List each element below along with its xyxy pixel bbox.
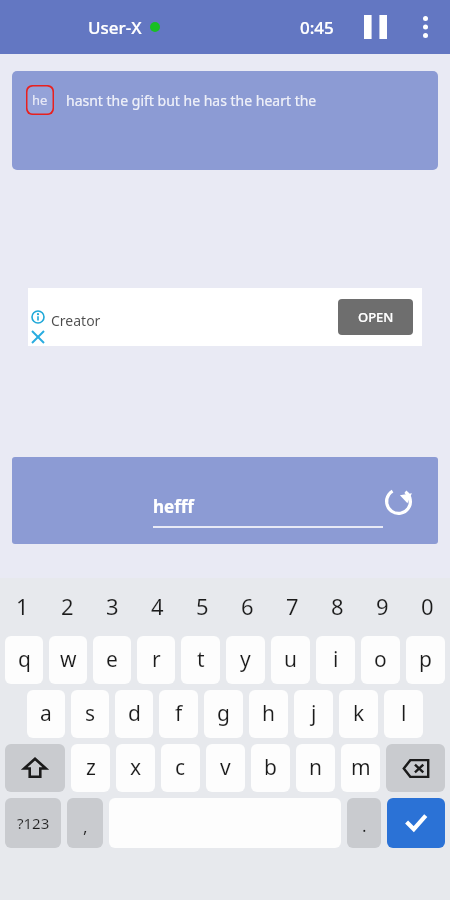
staticText: OPEN xyxy=(358,308,394,326)
button[interactable]: o xyxy=(361,636,400,684)
staticText: y xyxy=(240,645,251,674)
staticText: u xyxy=(284,645,297,674)
button[interactable]: OPEN xyxy=(338,299,413,335)
staticText: g xyxy=(217,699,230,728)
staticText: o xyxy=(374,645,387,674)
staticText: v xyxy=(220,753,231,782)
staticText: h xyxy=(262,699,275,728)
button[interactable]: p xyxy=(406,636,445,684)
staticText: n xyxy=(309,753,322,782)
button[interactable]: 5 xyxy=(180,578,225,633)
staticText: t xyxy=(197,645,205,674)
staticText: z xyxy=(86,753,96,782)
button[interactable]: c xyxy=(161,744,200,792)
button[interactable]: g xyxy=(204,690,243,738)
staticText: he xyxy=(32,91,48,109)
staticText: c xyxy=(175,753,186,782)
button[interactable]: Backspace xyxy=(386,744,445,792)
button[interactable]: r xyxy=(137,636,175,684)
staticText: 8 xyxy=(331,591,344,621)
staticText: 0:45 xyxy=(300,16,334,39)
button[interactable]: Enter xyxy=(387,798,445,848)
button[interactable]: 8 xyxy=(315,578,360,633)
staticText: d xyxy=(128,699,141,728)
button[interactable]: Shift xyxy=(5,744,65,792)
staticText: hasnt the gift but he has the heart the xyxy=(66,91,317,110)
button[interactable]: q xyxy=(5,636,43,684)
staticText: 9 xyxy=(376,591,389,621)
button[interactable]: k xyxy=(339,690,378,738)
button[interactable]: 0 xyxy=(405,578,450,633)
staticText: . xyxy=(362,814,367,837)
staticText: k xyxy=(353,699,365,728)
button[interactable]: v xyxy=(206,744,245,792)
button[interactable]: , xyxy=(67,798,103,848)
button[interactable]: a xyxy=(27,690,65,738)
button[interactable]: z xyxy=(71,744,110,792)
staticText: w xyxy=(60,645,77,674)
button[interactable]: j xyxy=(294,690,333,738)
staticText: p xyxy=(419,645,432,674)
staticText: Creator xyxy=(51,311,101,330)
button[interactable]: i xyxy=(316,636,355,684)
staticText: 3 xyxy=(106,591,119,621)
staticText: a xyxy=(40,699,52,728)
button[interactable]: l xyxy=(384,690,423,738)
button[interactable]: x xyxy=(116,744,155,792)
staticText: 6 xyxy=(241,591,254,621)
button[interactable]: Close ad xyxy=(31,330,45,344)
button[interactable]: 4 xyxy=(135,578,180,633)
button[interactable]: he xyxy=(12,71,438,170)
button[interactable]: y xyxy=(226,636,265,684)
staticText: i xyxy=(333,645,339,674)
button[interactable]: 2 xyxy=(45,578,90,633)
staticText: l xyxy=(401,699,407,728)
button[interactable]: ?123 xyxy=(5,798,61,848)
button[interactable]: u xyxy=(271,636,310,684)
button[interactable]: 9 xyxy=(360,578,405,633)
staticText: 5 xyxy=(196,591,209,621)
staticText: x xyxy=(130,753,142,782)
staticText: s xyxy=(85,699,96,728)
button[interactable]: d xyxy=(115,690,153,738)
button[interactable]: 1 xyxy=(0,578,45,633)
staticText: ?123 xyxy=(17,813,50,833)
staticText: b xyxy=(264,753,277,782)
button[interactable]: More options xyxy=(410,12,440,42)
button[interactable]: h xyxy=(249,690,288,738)
staticText: 7 xyxy=(286,591,299,621)
staticText: m xyxy=(351,753,371,782)
staticText: 4 xyxy=(151,591,164,621)
button[interactable]: b xyxy=(251,744,290,792)
button[interactable]: e xyxy=(93,636,131,684)
button[interactable]: m xyxy=(341,744,380,792)
button[interactable]: Pause xyxy=(358,10,392,44)
button[interactable]: Refresh xyxy=(378,481,418,521)
button[interactable]: 7 xyxy=(270,578,315,633)
button[interactable]: n xyxy=(296,744,335,792)
button[interactable]: w xyxy=(49,636,87,684)
staticText: q xyxy=(18,645,31,674)
button[interactable]: hefff xyxy=(153,495,383,528)
button[interactable]: he xyxy=(26,85,54,115)
staticText: 2 xyxy=(61,591,74,621)
staticText: User-X xyxy=(88,16,142,39)
button[interactable]: Ad information xyxy=(31,310,45,324)
staticText: f xyxy=(175,699,183,728)
staticText: hefff xyxy=(153,495,194,518)
staticText: 1 xyxy=(16,591,29,621)
staticText: , xyxy=(83,815,88,838)
button[interactable]: 6 xyxy=(225,578,270,633)
button[interactable]: t xyxy=(181,636,220,684)
staticText: j xyxy=(311,699,317,728)
staticText: r xyxy=(152,645,161,674)
button[interactable]: s xyxy=(71,690,109,738)
staticText: 0 xyxy=(421,591,434,621)
button[interactable]: f xyxy=(159,690,198,738)
staticText: e xyxy=(106,645,118,674)
button[interactable]: . xyxy=(347,798,381,848)
button[interactable]: 3 xyxy=(90,578,135,633)
button[interactable]: Ad information xyxy=(28,288,422,346)
